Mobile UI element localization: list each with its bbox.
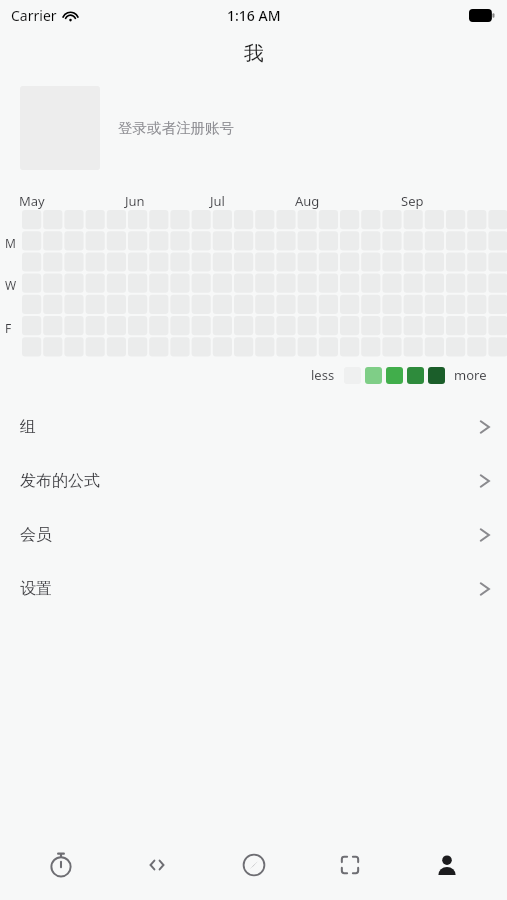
staticText: Aug	[295, 192, 320, 210]
staticText: 我	[244, 41, 264, 66]
staticText: 发布的公式	[20, 471, 100, 491]
staticText: Carrier	[11, 6, 57, 25]
staticText: 会员	[20, 525, 52, 545]
staticText: May	[19, 192, 45, 210]
button[interactable]: Explore	[218, 835, 290, 895]
staticText: 登录或者注册账号	[118, 119, 234, 137]
button[interactable]: Profile	[411, 835, 483, 895]
staticText: Jul	[210, 192, 225, 210]
staticText: F	[5, 320, 12, 336]
staticText: Sep	[401, 192, 424, 210]
staticText: M	[5, 235, 16, 251]
staticText: less	[311, 366, 335, 384]
button[interactable]: Scan	[314, 835, 386, 895]
staticText: 1:16 AM	[227, 6, 281, 25]
button[interactable]: 组	[0, 400, 507, 454]
staticText: 设置	[20, 579, 52, 599]
button[interactable]: Code	[121, 835, 193, 895]
button[interactable]: 会员	[0, 508, 507, 562]
staticText: more	[454, 366, 487, 384]
staticText: Jun	[125, 192, 145, 210]
staticText: W	[5, 277, 17, 293]
staticText: 组	[20, 417, 36, 437]
button[interactable]: Timer	[25, 835, 97, 895]
button[interactable]: 发布的公式	[0, 454, 507, 508]
button[interactable]: 设置	[0, 562, 507, 616]
button[interactable]: 登录或者注册账号	[0, 76, 507, 180]
